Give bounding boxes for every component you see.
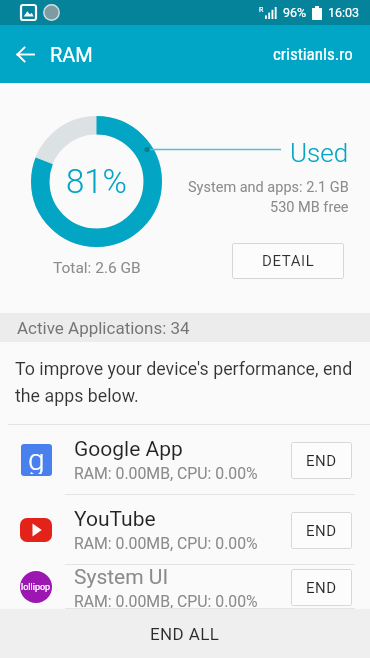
button[interactable]: DETAIL [232,243,344,279]
staticText: Used [290,138,349,168]
staticText: RAM: 0.00MB, CPU: 0.00% [74,464,258,483]
staticText: 96% [283,5,307,20]
staticText: g [28,444,45,474]
staticText: END [306,452,337,470]
staticText: RAM: 0.00MB, CPU: 0.00% [74,592,258,609]
staticText: System UI [74,565,169,590]
staticText: cristianls.ro [273,44,353,64]
button[interactable]: END ALL [0,609,370,658]
staticText: RAM [50,43,93,66]
staticText: To improve your device's performance, en… [15,358,366,407]
staticText: 81% [66,162,128,201]
button[interactable]: END [291,569,352,606]
button[interactable]: g [0,425,370,495]
staticText: END ALL [150,624,220,644]
staticText: R [259,6,264,14]
button[interactable]: lollipop [0,565,370,609]
staticText: DETAIL [262,252,315,270]
button[interactable]: YouTube [0,495,370,565]
staticText: 16:03 [328,5,360,20]
staticText: Google App [74,437,183,462]
staticText: lollipop [21,582,51,593]
button[interactable]: END [291,442,352,479]
staticText: Total: 2.6 GB [53,259,141,277]
staticText: END [306,522,337,540]
staticText: YouTube [74,507,156,532]
staticText: RAM: 0.00MB, CPU: 0.00% [74,534,258,553]
staticText: Active Applications: 34 [17,318,190,338]
staticText: 530 MB free [270,199,349,216]
button[interactable]: Navigate up [0,29,50,79]
button[interactable]: END [291,512,352,549]
staticText: System and apps: 2.1 GB [188,179,349,196]
staticText: END [306,579,337,597]
